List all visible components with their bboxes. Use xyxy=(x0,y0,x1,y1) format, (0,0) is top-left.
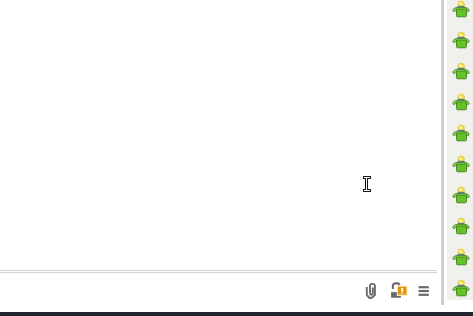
button[interactable]: Contact 10 xyxy=(452,280,470,297)
button[interactable]: Contact 5 xyxy=(452,125,470,142)
button[interactable]: Contact 9 xyxy=(452,249,470,266)
button[interactable]: Contact 3 xyxy=(452,63,470,80)
button[interactable]: Attach file xyxy=(365,281,378,300)
button[interactable]: Contact 4 xyxy=(452,94,470,111)
button[interactable]: Contact 1 xyxy=(452,1,470,18)
button[interactable]: Contact 7 xyxy=(452,187,470,204)
button[interactable]: Contact 6 xyxy=(452,156,470,173)
button[interactable]: Contact 8 xyxy=(452,218,470,235)
button[interactable]: Connection not secure xyxy=(389,281,408,300)
button[interactable]: Contact 2 xyxy=(452,32,470,49)
button[interactable]: Menu xyxy=(416,281,432,300)
